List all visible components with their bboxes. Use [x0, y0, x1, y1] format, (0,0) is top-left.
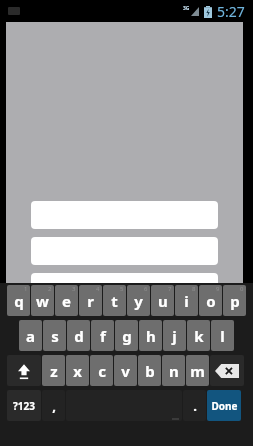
- button[interactable]: n: [162, 355, 185, 386]
- button[interactable]: a: [19, 320, 42, 351]
- staticText: f: [100, 326, 106, 346]
- staticText: .: [193, 397, 197, 415]
- button[interactable]: z: [42, 355, 65, 386]
- button[interactable]: Done: [207, 390, 241, 421]
- staticText: s: [51, 326, 59, 346]
- staticText: l: [220, 326, 225, 346]
- button[interactable]: u: [151, 285, 174, 316]
- button[interactable]: b: [138, 355, 161, 386]
- button[interactable]: p: [223, 285, 246, 316]
- button[interactable]: w: [31, 285, 54, 316]
- button[interactable]: h: [139, 320, 162, 351]
- button[interactable]: e: [55, 285, 78, 316]
- button[interactable]: m: [186, 355, 209, 386]
- staticText: Done: [211, 399, 238, 413]
- staticText: d: [74, 326, 84, 346]
- button[interactable]: .: [183, 390, 206, 421]
- button[interactable]: [31, 237, 218, 265]
- button[interactable]: f: [91, 320, 114, 351]
- staticText: 9: [216, 285, 220, 293]
- staticText: o: [206, 291, 216, 311]
- button[interactable]: ,: [42, 390, 65, 421]
- button[interactable]: Backspace: [210, 355, 244, 386]
- staticText: 7: [168, 285, 172, 293]
- staticText: m: [190, 361, 205, 381]
- staticText: c: [98, 361, 106, 381]
- staticText: r: [87, 291, 94, 311]
- staticText: 3: [72, 285, 76, 293]
- staticText: t: [111, 291, 118, 311]
- button[interactable]: ?123: [7, 390, 41, 421]
- button[interactable]: g: [115, 320, 138, 351]
- button[interactable]: x: [66, 355, 89, 386]
- button[interactable]: s: [43, 320, 66, 351]
- staticText: u: [158, 291, 168, 311]
- staticText: e: [62, 291, 71, 311]
- button[interactable]: [31, 201, 218, 229]
- staticText: w: [36, 291, 49, 311]
- staticText: h: [146, 326, 156, 346]
- staticText: 6: [144, 285, 148, 293]
- staticText: 1: [24, 285, 28, 293]
- staticText: 2: [48, 285, 52, 293]
- staticText: x: [73, 361, 82, 381]
- staticText: z: [50, 361, 58, 381]
- button[interactable]: q: [7, 285, 30, 316]
- button[interactable]: l: [211, 320, 234, 351]
- staticText: v: [121, 361, 130, 381]
- staticText: 5:27: [217, 2, 245, 21]
- staticText: j: [172, 326, 177, 346]
- staticText: n: [169, 361, 179, 381]
- button[interactable]: [31, 273, 218, 301]
- button[interactable]: y: [127, 285, 150, 316]
- staticText: g: [122, 326, 132, 346]
- button[interactable]: r: [79, 285, 102, 316]
- staticText: 0: [240, 285, 244, 293]
- staticText: 8: [192, 285, 196, 293]
- staticText: k: [194, 326, 204, 346]
- button[interactable]: t: [103, 285, 126, 316]
- staticText: 5: [120, 285, 124, 293]
- staticText: b: [145, 361, 155, 381]
- staticText: q: [14, 291, 24, 311]
- staticText: ?123: [13, 399, 35, 413]
- staticText: y: [134, 291, 143, 311]
- staticText: a: [26, 326, 35, 346]
- button[interactable]: Shift: [7, 355, 41, 386]
- button[interactable]: v: [114, 355, 137, 386]
- button[interactable]: d: [67, 320, 90, 351]
- button[interactable]: o: [199, 285, 222, 316]
- button[interactable]: i: [175, 285, 198, 316]
- staticText: p: [230, 291, 240, 311]
- staticText: ,: [52, 397, 56, 415]
- staticText: i: [184, 291, 189, 311]
- button[interactable]: c: [90, 355, 113, 386]
- staticText: 4: [96, 285, 100, 293]
- staticText: 3G: [183, 5, 190, 12]
- button[interactable]: k: [187, 320, 210, 351]
- button[interactable]: j: [163, 320, 186, 351]
